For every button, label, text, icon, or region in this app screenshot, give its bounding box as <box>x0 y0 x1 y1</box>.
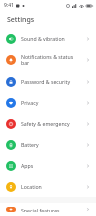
staticText: Notifications & status bar <box>21 53 82 67</box>
button[interactable]: Location <box>0 176 96 197</box>
staticText: Apps <box>21 162 82 169</box>
button[interactable]: Special features <box>0 203 96 216</box>
button[interactable]: Password & security <box>0 71 96 92</box>
button[interactable]: Safety & emergency <box>0 113 96 134</box>
staticText: Location <box>21 183 82 190</box>
staticText: Special features <box>21 207 82 212</box>
staticText: Safety & emergency <box>21 120 82 127</box>
staticText: Settings <box>7 15 35 25</box>
button[interactable]: Battery <box>0 134 96 155</box>
staticText: Sound & vibration <box>21 35 82 42</box>
button[interactable]: Sound & vibration <box>0 28 96 49</box>
staticText: Password & security <box>21 78 82 85</box>
button[interactable]: Apps <box>0 155 96 176</box>
staticText: Battery <box>21 141 82 148</box>
staticText: Privacy <box>21 99 82 106</box>
staticText: 9:41 <box>4 2 14 9</box>
button[interactable]: Notifications & status bar <box>0 49 96 71</box>
button[interactable]: Privacy <box>0 92 96 113</box>
